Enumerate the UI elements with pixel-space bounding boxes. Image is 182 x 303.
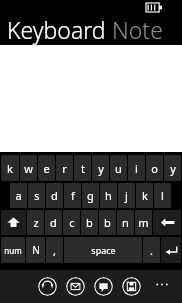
staticText: b — [86, 215, 93, 230]
button[interactable]: s — [28, 183, 45, 208]
button[interactable]: f — [64, 183, 81, 208]
button[interactable]: w — [20, 155, 37, 181]
button[interactable]: g — [82, 183, 99, 208]
button[interactable]: Message — [94, 277, 113, 296]
staticText: Note — [112, 14, 163, 45]
staticText: y — [170, 161, 176, 176]
staticText: g — [87, 188, 94, 203]
button[interactable]: c — [63, 210, 80, 235]
staticText: a — [15, 188, 22, 203]
button[interactable]: j — [118, 183, 135, 208]
button[interactable]: Shift — [1, 210, 26, 235]
button[interactable]: y — [92, 155, 109, 181]
button[interactable]: Backspace — [153, 210, 181, 235]
button[interactable]: h — [100, 183, 117, 208]
button[interactable]: o — [146, 155, 163, 181]
button[interactable]: Enter — [161, 237, 181, 263]
button[interactable]: N — [26, 237, 45, 263]
staticText: k — [7, 161, 13, 176]
staticText: , — [53, 243, 56, 258]
staticText: t — [81, 161, 85, 176]
staticText: l — [161, 188, 164, 203]
staticText: c — [69, 215, 75, 230]
staticText: b — [104, 215, 111, 230]
staticText: o — [151, 161, 158, 176]
button[interactable]: t — [74, 155, 91, 181]
button[interactable]: l — [154, 183, 171, 208]
staticText: space — [91, 244, 116, 256]
button[interactable]: z — [27, 210, 44, 235]
staticText: d — [51, 188, 58, 203]
staticText: e — [43, 161, 50, 176]
button[interactable]: , — [46, 237, 63, 263]
staticText: d — [50, 215, 57, 230]
button[interactable]: b — [81, 210, 98, 235]
button[interactable]: m — [135, 210, 152, 235]
staticText: . — [150, 243, 153, 258]
staticText: f — [71, 188, 75, 203]
button[interactable]: space — [64, 237, 142, 263]
staticText: i — [135, 161, 138, 176]
button[interactable]: Save — [122, 277, 141, 296]
button[interactable]: d — [46, 183, 63, 208]
staticText: N — [32, 243, 40, 257]
button[interactable]: n — [117, 210, 134, 235]
staticText: w — [24, 161, 33, 176]
button[interactable]: i — [128, 155, 145, 181]
staticText: s — [34, 188, 40, 203]
staticText: y — [98, 161, 104, 176]
staticText: k — [142, 188, 148, 203]
button[interactable]: r — [56, 155, 73, 181]
button[interactable]: Mail — [66, 277, 85, 296]
staticText: num — [4, 245, 22, 256]
staticText: z — [33, 215, 39, 230]
staticText: r — [62, 161, 67, 176]
button[interactable]: u — [110, 155, 127, 181]
staticText: n — [122, 215, 129, 230]
staticText: j — [125, 188, 128, 203]
button[interactable]: . — [143, 237, 160, 263]
staticText: u — [115, 161, 122, 176]
button[interactable]: k — [1, 155, 19, 181]
button[interactable]: More options — [152, 277, 172, 297]
button[interactable]: b — [99, 210, 116, 235]
staticText: h — [105, 188, 112, 203]
button[interactable]: y — [164, 155, 181, 181]
button[interactable]: Keyboard — [0, 14, 182, 45]
button[interactable]: e — [38, 155, 55, 181]
button[interactable]: num — [1, 237, 25, 263]
staticText: Keyboard — [7, 14, 106, 45]
button[interactable]: d — [45, 210, 62, 235]
button[interactable]: a — [10, 183, 27, 208]
button[interactable]: Refresh — [38, 277, 57, 296]
staticText: m — [138, 215, 149, 230]
button[interactable]: k — [136, 183, 153, 208]
